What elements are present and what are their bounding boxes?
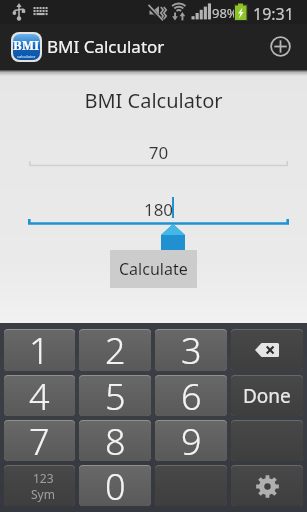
button[interactable]: 0 [79,466,151,506]
staticText: 0 [105,466,126,502]
button[interactable] [155,466,227,506]
button[interactable]: 123 [4,466,75,506]
staticText: BMI [13,36,40,54]
button[interactable]: 9 [155,421,227,461]
button[interactable]: Backspace [231,330,303,371]
staticText: Done [243,383,291,409]
staticText: 3 [181,330,202,367]
staticText: 1 [29,330,50,367]
staticText: Calculate [119,258,188,280]
staticText: 70 [29,141,288,164]
staticText: BMI Calculator [0,87,307,114]
staticText: 7 [29,421,50,457]
button[interactable]: 6 [155,376,227,416]
staticText: Sym [31,486,55,502]
button[interactable]: Add [258,24,303,69]
button[interactable]: 7 [4,421,75,461]
staticText: 9 [181,421,202,457]
staticText: 6 [181,376,202,412]
button[interactable]: Calculate [110,250,197,288]
staticText: 19:31 [253,3,294,25]
staticText: BMI Calculator [47,35,165,58]
button[interactable]: 2 [79,330,151,371]
button[interactable]: 4 [4,376,75,416]
staticText: 180 [28,198,289,221]
button[interactable] [231,421,303,461]
button[interactable]: 5 [79,376,151,416]
staticText: 2 [105,330,126,367]
staticText: calculator [17,54,36,59]
staticText: 4 [29,376,50,412]
staticText: 98% [212,4,238,22]
staticText: 8 [105,421,126,457]
button[interactable]: 1 [4,330,75,371]
button[interactable]: Settings [231,466,303,506]
button[interactable]: 8 [79,421,151,461]
button[interactable]: 3 [155,330,227,371]
staticText: 5 [105,376,126,412]
button[interactable]: Done [231,376,303,416]
staticText: 123 [33,470,54,486]
